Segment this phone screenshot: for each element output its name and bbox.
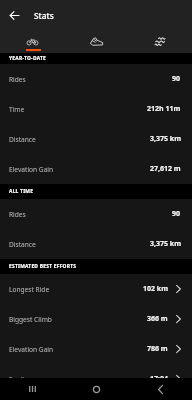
button[interactable]: Back: [128, 378, 192, 400]
staticText: Distance: [9, 135, 36, 144]
button[interactable]: Distance: [0, 229, 192, 259]
button[interactable]: Distance: [0, 124, 192, 154]
button[interactable]: Rides: [0, 199, 192, 229]
button[interactable]: Rides tab: [0, 30, 64, 53]
staticText: 212h 11m: [147, 104, 181, 114]
staticText: Distance: [9, 240, 36, 249]
staticText: Longest Ride: [9, 285, 50, 294]
button[interactable]: Longest Ride: [0, 274, 192, 304]
staticText: Elevation Gain: [9, 165, 54, 174]
staticText: Biggest Climb: [9, 315, 52, 324]
staticText: ALL TIME: [9, 188, 34, 195]
staticText: 27,612 m: [150, 164, 181, 174]
staticText: Time: [9, 105, 25, 114]
staticText: 5 mile: [9, 375, 28, 384]
button[interactable]: Rides: [0, 64, 192, 94]
staticText: Stats: [34, 10, 54, 21]
button[interactable]: Runs tab: [64, 30, 128, 53]
staticText: 90: [172, 74, 181, 84]
staticText: 90: [172, 209, 181, 219]
staticText: 786 m: [147, 344, 168, 354]
staticText: Elevation Gain: [9, 345, 54, 354]
button[interactable]: Elevation Gain: [0, 334, 192, 364]
button[interactable]: 5 mile: [0, 364, 192, 394]
staticText: 3,375 km: [150, 239, 181, 249]
button[interactable]: Time: [0, 94, 192, 124]
button[interactable]: Swims tab: [128, 30, 192, 53]
button[interactable]: Home: [64, 378, 128, 400]
staticText: 3,375 km: [150, 134, 181, 144]
staticText: ESTIMATED BEST EFFORTS: [9, 263, 77, 270]
staticText: Rides: [9, 75, 26, 84]
staticText: 102 km: [143, 284, 168, 294]
button[interactable]: Recents: [0, 378, 64, 400]
button[interactable]: Biggest Climb: [0, 304, 192, 334]
button[interactable]: Back: [1, 2, 27, 28]
staticText: Rides: [9, 210, 26, 219]
button[interactable]: Elevation Gain: [0, 154, 192, 184]
staticText: YEAR-TO-DATE: [9, 55, 47, 62]
staticText: 17:04: [150, 374, 168, 384]
staticText: 366 m: [147, 314, 168, 324]
